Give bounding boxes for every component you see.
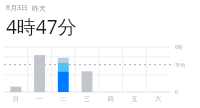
button[interactable]: 4時47分 [6, 14, 200, 40]
button[interactable]: 8月3日 [6, 3, 200, 13]
staticText: 4時47分 [6, 14, 77, 40]
staticText: 昨天 [32, 4, 46, 13]
button[interactable]: Weekly sleep chart [0, 42, 200, 108]
staticText: 8月3日 [6, 3, 29, 13]
